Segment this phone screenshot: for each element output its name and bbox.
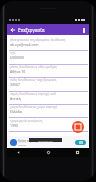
staticText: πόλη διευθύνσεως ταχυδρομικός [10, 78, 57, 82]
staticText: 34567 [10, 82, 21, 87]
staticText: 1990 [10, 123, 19, 128]
button[interactable]: ημερομηνία γεννήσεως [7, 118, 89, 131]
staticText: 6900000 [10, 55, 25, 60]
button[interactable]: Back [9, 26, 17, 34]
button[interactable]: Save [72, 121, 84, 133]
button[interactable]: OK [75, 140, 86, 145]
staticText: Αθήνα 10 [10, 69, 26, 74]
staticText: ηλεκτρονικού ταχυδρομείου διεύθυνση [10, 38, 66, 42]
staticText: χώρα διευθύνσεως χώρα περιοχή [10, 105, 58, 109]
staticText: Επεξεργασία [18, 27, 45, 33]
button[interactable]: Back [16, 150, 21, 155]
button[interactable]: Home [46, 150, 51, 155]
staticText: Χρήση σαρωτή [18, 139, 37, 143]
button[interactable]: More options [81, 26, 86, 34]
button[interactable]: μόνος διευθύνσεως οδός αριθμός [7, 64, 89, 77]
button[interactable]: Χρήση σαρωτή [7, 136, 89, 148]
button[interactable]: Recents [75, 150, 80, 155]
staticText: μόνος διευθύνσεως οδός αριθμός [10, 65, 58, 69]
button[interactable]: πόλη διευθύνσεως ταχυδρομικός [7, 77, 89, 90]
staticText: νομός διευθύνσεως περιοχή κωδ [10, 92, 56, 96]
staticText: OK [79, 141, 83, 145]
button[interactable]: χώρα διευθύνσεως χώρα περιοχή [7, 104, 89, 117]
button[interactable]: ηλεκτρονικού ταχυδρομείου διεύθυνση [7, 37, 89, 50]
staticText: αποθήκευση [38, 139, 53, 142]
staticText: ημερομηνία γεννήσεως [10, 119, 43, 123]
staticText: Ελλάδα [10, 109, 22, 114]
button[interactable]: νομός διευθύνσεως περιοχή κωδ [7, 91, 89, 104]
staticText: ab.xyz@mail.com [10, 42, 39, 47]
staticText: Αττική [10, 96, 21, 101]
staticText: τηλ [10, 51, 15, 55]
staticText: κάρτας [18, 143, 27, 146]
button[interactable]: τηλ [7, 50, 89, 63]
